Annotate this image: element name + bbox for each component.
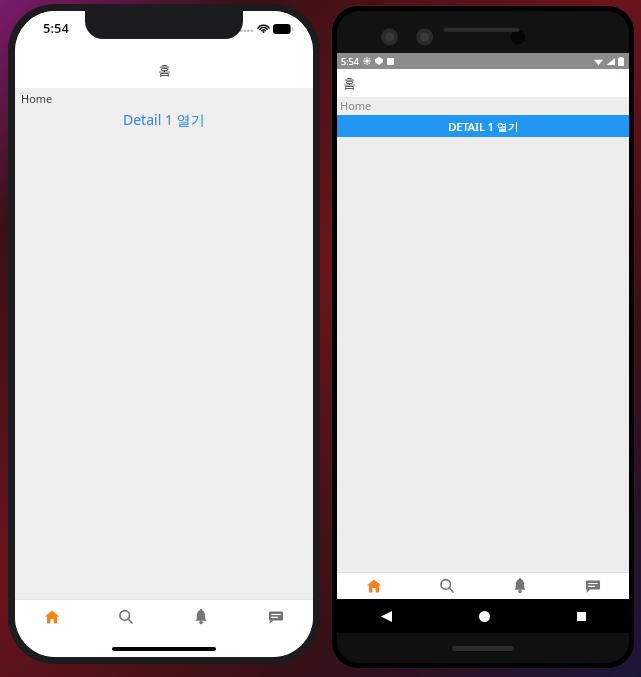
staticText: 5:54: [43, 19, 69, 37]
button[interactable]: Detail 1 열기: [123, 110, 205, 129]
button[interactable]: Notifications: [163, 600, 238, 633]
staticText: DETAIL 1 열기: [448, 119, 519, 134]
button[interactable]: Messages: [556, 573, 629, 599]
button[interactable]: Home: [474, 606, 494, 626]
button[interactable]: Messages: [238, 600, 313, 633]
staticText: 5:54: [341, 55, 359, 67]
staticText: Home: [21, 91, 53, 106]
staticText: 홈: [158, 62, 171, 78]
button[interactable]: Home: [15, 600, 89, 633]
button[interactable]: DETAIL 1 열기: [337, 115, 629, 137]
button[interactable]: Search: [410, 573, 483, 599]
button[interactable]: Recents: [571, 606, 591, 626]
button[interactable]: Notifications: [483, 573, 556, 599]
staticText: Home: [340, 98, 372, 113]
staticText: 홈: [343, 75, 356, 91]
button[interactable]: Back: [376, 606, 396, 626]
button[interactable]: Home: [337, 573, 410, 599]
button[interactable]: Search: [89, 600, 163, 633]
